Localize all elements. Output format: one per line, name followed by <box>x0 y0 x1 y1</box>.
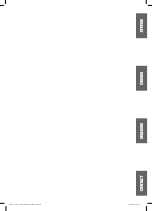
button[interactable]: CONTACT <box>136 170 149 197</box>
button[interactable]: DESIGN <box>136 65 149 92</box>
button[interactable]: SYSTEM <box>136 13 149 40</box>
button[interactable]: MEASURE <box>136 118 149 145</box>
